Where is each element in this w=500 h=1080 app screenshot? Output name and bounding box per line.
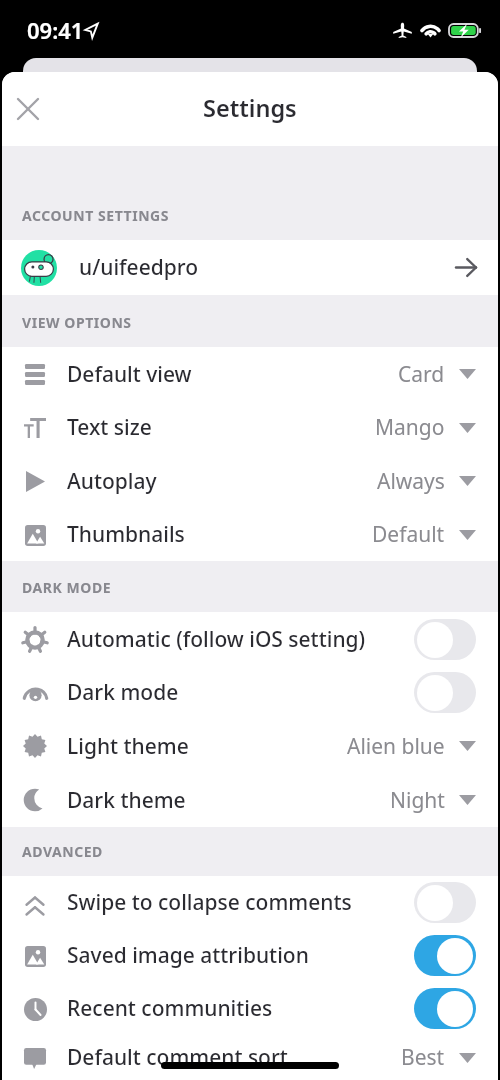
button[interactable]: Toggle on (414, 935, 476, 976)
staticText: Night (390, 786, 445, 815)
staticText: Settings (203, 92, 297, 124)
button[interactable]: Close (6, 87, 50, 131)
staticText: Swipe to collapse comments (67, 888, 352, 917)
staticText: Alien blue (347, 732, 445, 761)
staticText: Default comment sort (67, 1043, 288, 1072)
button[interactable]: Toggle off (414, 882, 476, 923)
staticText: u/uifeedpro (79, 253, 199, 282)
staticText: ACCOUNT SETTINGS (22, 206, 170, 225)
staticText: Autoplay (67, 467, 157, 496)
button[interactable]: Automatic (follow iOS setting) (2, 612, 498, 666)
button[interactable]: Light theme (2, 719, 498, 773)
button[interactable]: Toggle on (414, 988, 476, 1029)
button[interactable]: Dark theme (2, 773, 498, 827)
staticText: Text size (67, 413, 152, 442)
staticText: VIEW OPTIONS (22, 313, 132, 332)
staticText: Light theme (67, 732, 189, 761)
button[interactable]: Saved image attribution (2, 929, 498, 982)
button[interactable]: Autoplay (2, 454, 498, 508)
button[interactable]: Toggle off (414, 619, 476, 660)
staticText: DARK MODE (22, 578, 112, 597)
staticText: Recent communities (67, 994, 273, 1023)
button[interactable]: Text size (2, 401, 498, 454)
staticText: Dark theme (67, 786, 186, 815)
staticText: Best (401, 1043, 445, 1072)
staticText: Thumbnails (67, 520, 185, 549)
button[interactable]: Dark mode (2, 666, 498, 719)
staticText: Mango (375, 413, 445, 442)
staticText: Saved image attribution (67, 941, 309, 970)
staticText: Always (377, 467, 445, 496)
button[interactable]: u/uifeedpro (2, 240, 498, 295)
button[interactable]: Recent communities (2, 982, 498, 1035)
staticText: Default (372, 520, 445, 549)
staticText: Default view (67, 360, 192, 389)
staticText: ADVANCED (22, 842, 103, 861)
staticText: Card (398, 360, 445, 389)
button[interactable]: Swipe to collapse comments (2, 876, 498, 929)
button[interactable]: Thumbnails (2, 508, 498, 561)
button[interactable]: Toggle off (414, 672, 476, 713)
staticText: 09:41 (27, 15, 84, 45)
staticText: Automatic (follow iOS setting) (67, 625, 366, 654)
button[interactable]: Default comment sort (2, 1035, 498, 1080)
staticText: Dark mode (67, 678, 179, 707)
button[interactable]: Default view (2, 347, 498, 401)
